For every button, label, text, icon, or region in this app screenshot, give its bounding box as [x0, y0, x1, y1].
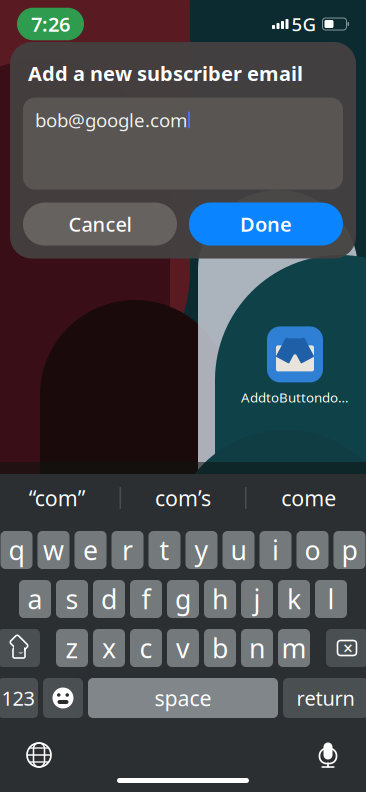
staticText: w	[43, 532, 64, 568]
staticText: h	[212, 581, 228, 617]
staticText: com’s	[155, 484, 211, 512]
button[interactable]: 123	[0, 678, 38, 718]
button[interactable]: s	[56, 580, 88, 618]
staticText: Done	[240, 211, 292, 237]
staticText: z	[65, 630, 78, 666]
staticText: ×	[343, 636, 353, 659]
button[interactable]: d	[93, 580, 125, 618]
staticText: l	[327, 581, 334, 617]
staticText: m	[281, 630, 306, 666]
staticText: o	[304, 532, 320, 568]
button[interactable]: f	[130, 580, 162, 618]
button[interactable]: e	[74, 531, 106, 569]
staticText: s	[65, 581, 78, 617]
button[interactable]: v	[167, 629, 199, 667]
button[interactable]: r	[111, 531, 143, 569]
button[interactable]: y	[185, 531, 217, 569]
button[interactable]: c	[130, 629, 162, 667]
staticText: 123	[1, 685, 34, 711]
button[interactable]: i	[259, 531, 291, 569]
button[interactable]: AddtoButtondo app	[241, 326, 349, 406]
staticText: q	[8, 532, 24, 568]
staticText: v	[176, 630, 190, 666]
button[interactable]: Dictate	[315, 740, 341, 770]
button[interactable]: Switch keyboard	[25, 741, 53, 769]
button[interactable]: Emoji	[43, 678, 83, 718]
staticText: space	[154, 684, 211, 712]
staticText: AddtoButtondo…	[241, 388, 349, 406]
button[interactable]: “com”	[0, 474, 120, 522]
staticText: a	[27, 581, 42, 617]
staticText: c	[139, 630, 152, 666]
staticText: f	[141, 581, 150, 617]
staticText: u	[230, 532, 246, 568]
button[interactable]: com’s	[121, 474, 245, 522]
button[interactable]: Cancel	[23, 203, 177, 246]
button[interactable]: q	[0, 531, 32, 569]
staticText: k	[287, 581, 301, 617]
button[interactable]: p	[333, 531, 365, 569]
button[interactable]: g	[167, 580, 199, 618]
staticText: g	[175, 581, 191, 617]
button[interactable]: Done	[189, 203, 343, 246]
button[interactable]: w	[37, 531, 69, 569]
button[interactable]: a	[19, 580, 51, 618]
button[interactable]: come	[246, 474, 366, 522]
staticText: bob@google.com	[35, 108, 187, 132]
staticText: p	[341, 532, 357, 568]
button[interactable]: k	[278, 580, 310, 618]
staticText: “com”	[29, 484, 86, 512]
button[interactable]: x	[93, 629, 125, 667]
staticText: y	[194, 532, 208, 568]
staticText: j	[253, 581, 260, 617]
button[interactable]: Delete	[326, 629, 366, 667]
button[interactable]: m	[278, 629, 310, 667]
staticText: 7:26	[31, 11, 70, 37]
staticText: return	[296, 685, 354, 711]
button[interactable]: return	[283, 678, 366, 718]
button[interactable]: u	[222, 531, 254, 569]
staticText: n	[249, 630, 265, 666]
staticText: r	[122, 532, 133, 568]
staticText: Cancel	[68, 211, 131, 237]
button[interactable]: z	[56, 629, 88, 667]
button[interactable]: n	[241, 629, 273, 667]
button[interactable]: l	[315, 580, 347, 618]
staticText: 5G	[291, 12, 316, 36]
staticText: Add a new subscriber email	[28, 60, 303, 87]
button[interactable]: b	[204, 629, 236, 667]
button[interactable]: t	[148, 531, 180, 569]
button[interactable]: Shift	[0, 629, 40, 667]
staticText: come	[281, 484, 336, 512]
staticText: t	[159, 532, 169, 568]
staticText: d	[101, 581, 117, 617]
staticText: e	[83, 532, 98, 568]
button[interactable]: o	[296, 531, 328, 569]
button[interactable]: j	[241, 580, 273, 618]
button[interactable]: h	[204, 580, 236, 618]
staticText: i	[272, 532, 279, 568]
button[interactable]: space	[88, 678, 278, 718]
staticText: x	[102, 630, 116, 666]
staticText: b	[212, 630, 228, 666]
